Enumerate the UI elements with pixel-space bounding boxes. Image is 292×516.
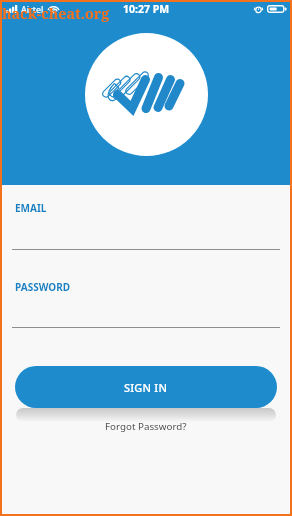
staticText: Airtel: [21, 3, 44, 15]
staticText: EMAIL: [15, 201, 47, 215]
staticText: hack-cheat.org: [2, 4, 110, 23]
staticText: SIGN IN: [124, 380, 168, 395]
staticText: 10:27 PM: [123, 2, 170, 15]
button[interactable]: SIGN IN: [15, 366, 277, 408]
button[interactable]: Forgot Password?: [99, 417, 193, 436]
staticText: PASSWORD: [15, 280, 71, 294]
